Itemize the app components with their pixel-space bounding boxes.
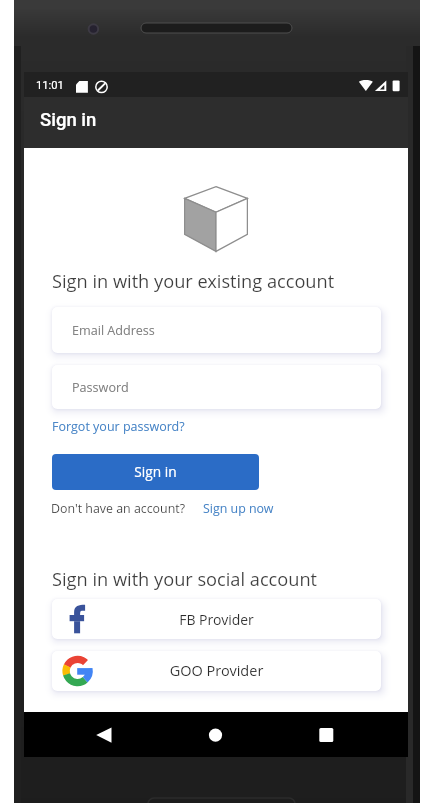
staticText: Sign in bbox=[52, 462, 259, 481]
staticText: GOO Provider bbox=[52, 661, 381, 681]
staticText: 11:01 bbox=[36, 79, 64, 92]
staticText: Email Address bbox=[72, 322, 155, 339]
button[interactable]: Recent apps bbox=[280, 712, 408, 757]
staticText: Password bbox=[72, 379, 129, 396]
button[interactable]: Email Address bbox=[52, 307, 381, 353]
button[interactable]: Sign in bbox=[52, 454, 259, 490]
button[interactable]: Forgot your password? bbox=[52, 418, 185, 435]
staticText: Don't have an account? bbox=[51, 500, 185, 517]
staticText: FB Provider bbox=[52, 610, 381, 629]
button[interactable]: GOO Provider bbox=[52, 651, 381, 691]
staticText: Sign in with your social account bbox=[52, 567, 317, 592]
button[interactable]: Back bbox=[24, 712, 152, 757]
button[interactable]: FB Provider bbox=[52, 599, 381, 639]
button[interactable]: Password bbox=[52, 365, 381, 409]
staticText: Sign in with your existing account bbox=[52, 269, 335, 294]
button[interactable]: Sign up now bbox=[203, 500, 274, 517]
staticText: Sign in bbox=[40, 109, 97, 131]
button[interactable]: Home bbox=[152, 712, 280, 757]
